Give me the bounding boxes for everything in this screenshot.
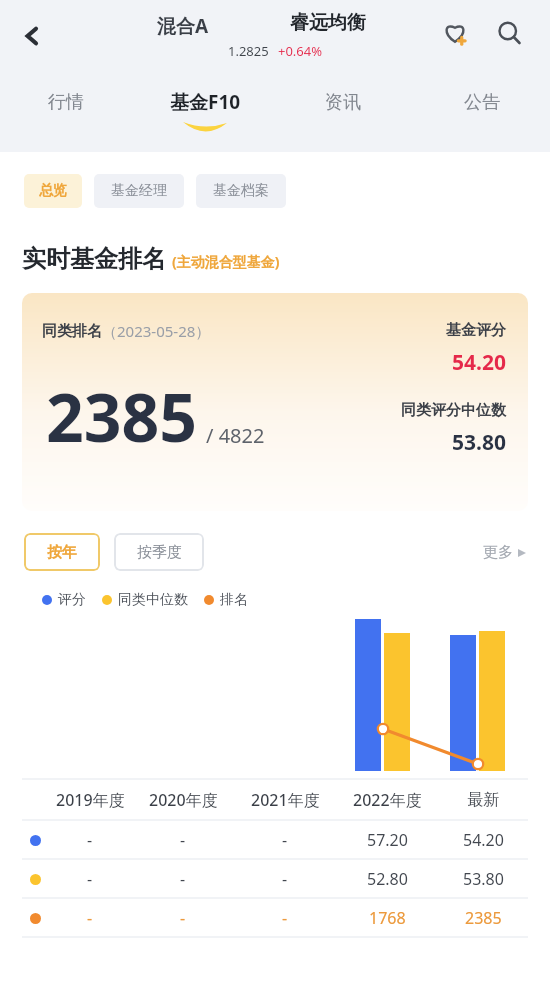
staticText: 同类评分中位数 <box>401 401 506 420</box>
staticText: - <box>282 907 288 929</box>
staticText: - <box>180 907 186 929</box>
staticText: 实时基金排名 <box>22 244 166 274</box>
staticText: 2385 <box>46 371 198 461</box>
staticText: 按季度 <box>137 543 182 562</box>
staticText: 2021年度 <box>251 789 320 811</box>
staticText: 同类排名 <box>42 322 102 341</box>
staticText: 混合A <box>157 13 209 39</box>
staticText: 2385 <box>465 907 502 929</box>
staticText: 基金档案 <box>213 182 269 200</box>
staticText: 57.20 <box>367 829 408 851</box>
staticText: 更多 <box>483 543 513 562</box>
staticText: (主动混合型基金) <box>172 252 280 271</box>
button[interactable]: 公告 <box>422 82 542 122</box>
staticText: 2019年度 <box>56 789 125 811</box>
staticText: 总览 <box>39 182 67 200</box>
staticText: - <box>282 868 288 890</box>
staticText: 按年 <box>47 543 77 562</box>
staticText: - <box>87 829 93 851</box>
staticText: 1.2825 <box>228 42 269 60</box>
staticText: 53.80 <box>452 428 506 457</box>
button[interactable]: 行情 <box>6 82 126 122</box>
button[interactable]: 按年 <box>24 533 100 571</box>
staticText: 54.20 <box>452 348 506 377</box>
staticText: - <box>87 907 93 929</box>
staticText: - <box>180 829 186 851</box>
button[interactable]: 基金经理 <box>94 174 184 208</box>
staticText: 基金F10 <box>170 89 241 115</box>
staticText: 睿远均衡 <box>290 11 366 35</box>
staticText: - <box>180 868 186 890</box>
staticText: 资讯 <box>325 91 361 114</box>
button[interactable]: Back <box>8 12 56 60</box>
staticText: - <box>282 829 288 851</box>
button[interactable]: 总览 <box>24 174 82 208</box>
staticText: +0.64% <box>278 42 323 60</box>
staticText: 2020年度 <box>149 789 218 811</box>
staticText: 53.80 <box>463 868 504 890</box>
button[interactable]: 基金F10 <box>145 82 265 122</box>
staticText: 行情 <box>48 91 84 114</box>
staticText: 同类中位数 <box>118 591 188 609</box>
button[interactable]: 基金档案 <box>196 174 286 208</box>
staticText: / 4822 <box>206 422 265 449</box>
button[interactable]: Add to favourites <box>432 10 478 56</box>
button[interactable]: 更多 <box>477 537 532 568</box>
staticText: 公告 <box>464 91 500 114</box>
staticText: - <box>87 868 93 890</box>
staticText: 评分 <box>58 591 86 609</box>
staticText: 54.20 <box>463 829 504 851</box>
button[interactable]: 同类排名 <box>22 293 528 511</box>
staticText: 52.80 <box>367 868 408 890</box>
button[interactable]: 按季度 <box>114 533 204 571</box>
staticText: 基金经理 <box>111 182 167 200</box>
staticText: 排名 <box>220 591 248 609</box>
staticText: 1768 <box>369 907 406 929</box>
staticText: 最新 <box>467 790 499 810</box>
staticText: 2022年度 <box>353 789 422 811</box>
button[interactable]: Search <box>486 10 532 56</box>
staticText: （2023-05-28） <box>102 321 211 341</box>
staticText: 基金评分 <box>446 321 506 340</box>
button[interactable]: 资讯 <box>283 82 403 122</box>
